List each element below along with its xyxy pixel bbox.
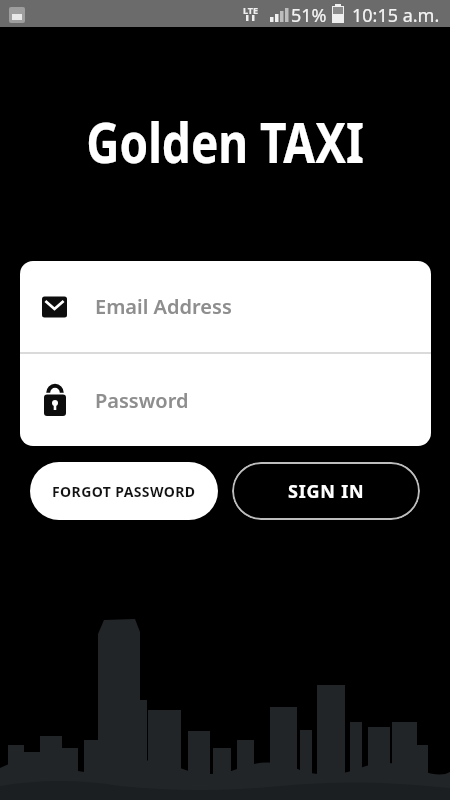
button[interactable]: Email Address [20, 261, 431, 352]
button[interactable]: Password [20, 354, 431, 446]
button[interactable]: SIGN IN [232, 462, 420, 520]
staticText: SIGN IN [288, 479, 365, 504]
staticText: LTE [243, 4, 259, 16]
staticText: Email Address [95, 293, 232, 320]
staticText: FORGOT PASSWORD [52, 482, 196, 501]
staticText: Golden TAXI [40, 103, 409, 179]
staticText: 10:15 a.m. [352, 3, 440, 28]
staticText: Password [95, 387, 189, 414]
staticText: 51% [291, 3, 327, 28]
button[interactable]: FORGOT PASSWORD [30, 462, 218, 520]
